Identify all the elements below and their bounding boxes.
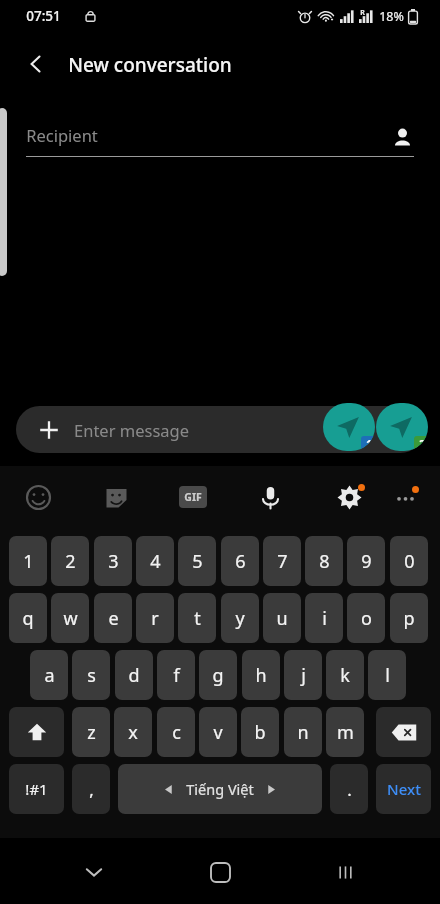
staticText: n [297, 720, 309, 745]
button[interactable]: e [94, 593, 132, 643]
staticText: 7 [277, 549, 288, 574]
button[interactable]: i [305, 593, 343, 643]
staticText: c [172, 720, 181, 745]
staticText: . [347, 778, 352, 801]
button[interactable]: d [115, 650, 153, 700]
button[interactable]: Recipient [0, 108, 440, 164]
button[interactable]: 4 [136, 536, 174, 586]
button[interactable]: p [390, 593, 428, 643]
button[interactable]: 5 [178, 536, 216, 586]
button[interactable]: q [9, 593, 47, 643]
button[interactable]: Shift [9, 707, 64, 757]
button[interactable]: Keyboard tool [171, 475, 215, 519]
button[interactable]: h [242, 650, 280, 700]
button[interactable]: Keyboard tool [327, 475, 371, 519]
staticText: k [340, 663, 350, 688]
staticText: GIF [184, 490, 202, 504]
button[interactable]: 1 [9, 536, 47, 586]
button[interactable]: Keyboard tool [16, 475, 60, 519]
staticText: s [87, 663, 96, 688]
staticText: !#1 [25, 779, 48, 799]
button[interactable]: y [221, 593, 259, 643]
button[interactable]: r [136, 593, 174, 643]
staticText: g [212, 663, 224, 688]
button[interactable]: g [199, 650, 237, 700]
button[interactable]: Hide keyboard [74, 852, 114, 892]
button[interactable]: Send with SIM 1 [323, 403, 375, 451]
staticText: 2 [65, 549, 76, 574]
staticText: 2 [419, 437, 425, 451]
button[interactable]: n [284, 707, 322, 757]
staticText: 6 [235, 549, 246, 574]
staticText: 1 [23, 549, 34, 574]
button[interactable]: , [72, 764, 110, 814]
button[interactable]: !#1 [9, 764, 64, 814]
staticText: e [108, 606, 119, 631]
button[interactable]: Next [376, 764, 431, 814]
staticText: h [255, 663, 267, 688]
button[interactable]: Recent apps [325, 852, 365, 892]
staticText: Tiếng Việt [186, 779, 254, 799]
staticText: 4 [150, 549, 161, 574]
button[interactable]: Add attachment [16, 406, 424, 453]
button[interactable]: f [157, 650, 195, 700]
staticText: u [276, 606, 288, 631]
button[interactable]: u [263, 593, 301, 643]
button[interactable]: m [326, 707, 364, 757]
button[interactable]: 3 [94, 536, 132, 586]
button[interactable]: Backspace [376, 707, 431, 757]
staticText: d [128, 663, 140, 688]
button[interactable]: Keyboard tool [94, 475, 138, 519]
staticText: a [44, 663, 55, 688]
button[interactable]: Keyboard tool [248, 475, 292, 519]
button[interactable]: Back [10, 38, 62, 90]
staticText: x [128, 720, 138, 745]
button[interactable]: 2 [51, 536, 89, 586]
button[interactable]: 0 [390, 536, 428, 586]
staticText: 1 [366, 437, 372, 451]
button[interactable]: t [178, 593, 216, 643]
button[interactable]: Add recipient from contacts [382, 117, 422, 157]
button[interactable]: . [330, 764, 368, 814]
staticText: 18% [379, 8, 404, 25]
staticText: b [254, 720, 266, 745]
button[interactable]: x [114, 707, 152, 757]
staticText: New conversation [68, 52, 232, 78]
button[interactable]: 7 [263, 536, 301, 586]
button[interactable]: o [347, 593, 385, 643]
button[interactable]: s [72, 650, 110, 700]
staticText: Next [387, 779, 421, 799]
button[interactable]: 8 [305, 536, 343, 586]
button[interactable]: Add attachment [30, 411, 68, 449]
button[interactable]: b [241, 707, 279, 757]
button[interactable]: c [157, 707, 195, 757]
staticText: 9 [361, 549, 372, 574]
staticText: r [151, 606, 159, 631]
staticText: 8 [319, 549, 330, 574]
button[interactable]: Send with SIM 2 [376, 403, 428, 451]
button[interactable]: j [284, 650, 322, 700]
button[interactable]: a [30, 650, 68, 700]
button[interactable]: 9 [347, 536, 385, 586]
button[interactable]: Keyboard tool [383, 475, 427, 519]
staticText: i [322, 606, 327, 631]
button[interactable]: Home [200, 852, 240, 892]
button[interactable]: l [368, 650, 406, 700]
button[interactable]: w [51, 593, 89, 643]
staticText: f [173, 663, 180, 688]
button[interactable]: Edge panel handle [0, 108, 7, 276]
staticText: R [360, 8, 365, 18]
button[interactable]: v [199, 707, 237, 757]
staticText: q [22, 606, 34, 631]
button[interactable]: z [72, 707, 110, 757]
staticText: Enter message [74, 419, 189, 441]
staticText: y [235, 606, 245, 631]
staticText: 07:51 [26, 7, 61, 25]
staticText: 0 [404, 549, 415, 574]
staticText: z [87, 720, 96, 745]
staticText: j [301, 663, 306, 688]
staticText: w [63, 606, 78, 631]
button[interactable]: Space, Tiếng Việt [118, 764, 322, 814]
button[interactable]: 6 [221, 536, 259, 586]
button[interactable]: k [326, 650, 364, 700]
